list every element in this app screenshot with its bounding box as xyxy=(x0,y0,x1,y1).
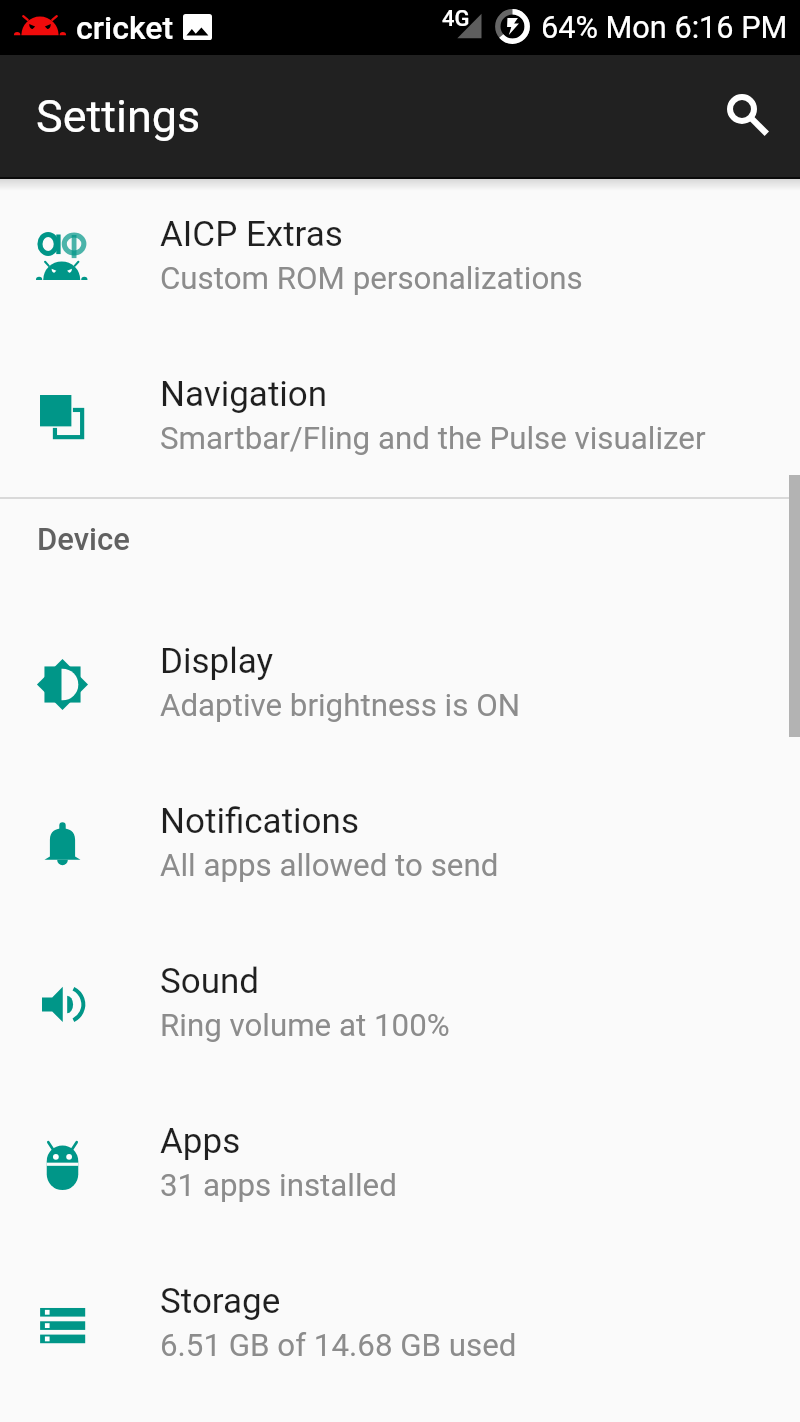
button[interactable]: Apps xyxy=(0,1084,800,1244)
button[interactable]: Storage xyxy=(0,1244,800,1404)
staticText: Apps xyxy=(160,1121,241,1162)
staticText: Storage xyxy=(160,1281,281,1322)
staticText: AICP Extras xyxy=(160,214,343,255)
staticText: Settings xyxy=(36,90,201,143)
staticText: 64% Mon 6:16 PM xyxy=(541,10,788,46)
staticText: Adaptive brightness is ON xyxy=(160,687,521,724)
button[interactable]: Search xyxy=(711,80,783,152)
staticText: cricket xyxy=(76,9,174,47)
staticText: Navigation xyxy=(160,374,328,415)
staticText: 4G xyxy=(442,6,470,32)
button[interactable]: Sound xyxy=(0,924,800,1084)
button[interactable]: AICP Extras xyxy=(0,177,800,337)
staticText: Sound xyxy=(160,961,260,1002)
staticText: Notifications xyxy=(160,801,359,842)
button[interactable]: Notifications xyxy=(0,764,800,924)
staticText: Device xyxy=(37,521,130,557)
staticText: Display xyxy=(160,641,274,682)
staticText: All apps allowed to send xyxy=(160,847,499,884)
staticText: 31 apps installed xyxy=(160,1167,397,1204)
staticText: Smartbar/Fling and the Pulse visualizer xyxy=(160,420,706,457)
button[interactable]: Navigation xyxy=(0,337,800,497)
staticText: 6.51 GB of 14.68 GB used xyxy=(160,1327,517,1364)
button[interactable]: Display xyxy=(0,604,800,764)
staticText: Custom ROM personalizations xyxy=(160,260,583,297)
staticText: Ring volume at 100% xyxy=(160,1007,450,1044)
